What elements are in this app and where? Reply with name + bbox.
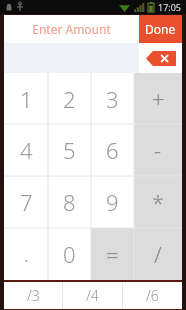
staticText: 6 [106,135,119,165]
staticText: / [154,239,162,269]
staticText: 8 [63,187,76,217]
button[interactable]: /4 [63,282,122,309]
staticText: 7 [20,187,33,217]
staticText: 5 [63,135,76,165]
button[interactable]: 9 [91,176,134,228]
button[interactable]: - [134,124,182,176]
staticText: + [152,84,165,114]
staticText: 9 [106,187,119,217]
staticText: Done [145,21,176,37]
button[interactable]: 2 [48,73,91,124]
button[interactable]: 7 [4,176,48,228]
staticText: Enter Amount [32,21,111,37]
staticText: . [24,241,29,268]
button[interactable]: * [134,176,182,228]
button[interactable]: 3 [91,73,134,124]
button[interactable]: . [4,228,48,280]
staticText: 0 [63,239,76,269]
staticText: - [154,135,162,165]
button[interactable]: Backspace [139,43,182,73]
button[interactable]: + [134,73,182,124]
button[interactable]: Done [139,15,182,43]
button[interactable]: = [91,228,134,280]
button[interactable]: 0 [48,228,91,280]
button[interactable]: Enter Amount [4,15,139,43]
staticText: 2 [63,84,76,114]
staticText: /4 [86,286,99,305]
staticText: 4 [20,135,33,165]
staticText: 17:05 [158,1,182,13]
staticText: /3 [27,286,40,305]
staticText: /6 [146,286,159,305]
staticText: = [106,239,119,269]
staticText: 1 [20,84,33,114]
button[interactable]: /6 [123,282,182,309]
button[interactable]: /3 [4,282,62,309]
button[interactable]: 4 [4,124,48,176]
button[interactable]: 8 [48,176,91,228]
staticText: * [152,187,165,217]
button[interactable]: 1 [4,73,48,124]
staticText: 3 [106,84,119,114]
button[interactable]: 6 [91,124,134,176]
button[interactable]: 5 [48,124,91,176]
button[interactable]: / [134,228,182,280]
